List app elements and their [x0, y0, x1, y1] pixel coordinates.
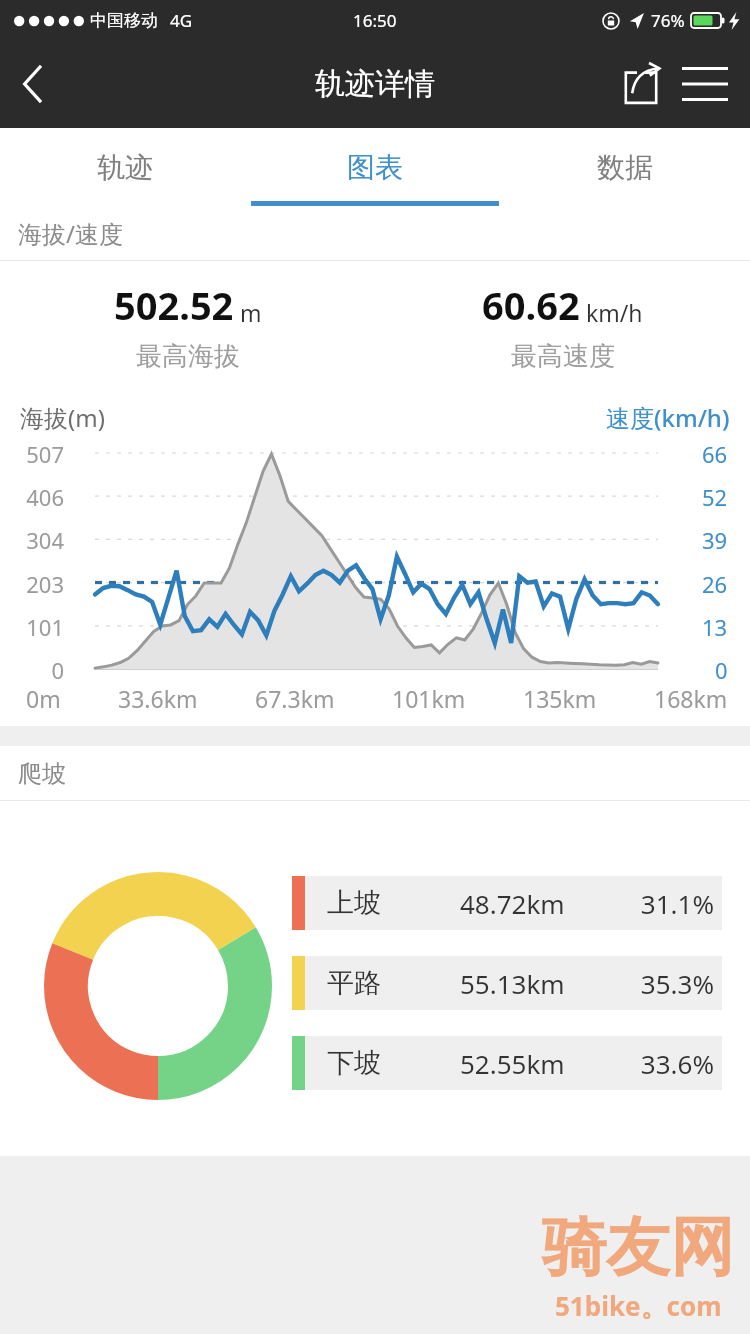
staticText: 4G — [170, 9, 193, 32]
button[interactable]: Menu — [672, 51, 738, 117]
staticText: 骑友网 — [542, 1207, 734, 1288]
staticText: 502.52 — [114, 279, 234, 331]
staticText: 0 — [715, 655, 728, 685]
staticText: 中国移动 — [90, 10, 158, 31]
staticText: 66 — [702, 439, 728, 469]
button[interactable]: 轨迹 — [0, 128, 250, 206]
staticText: 16:50 — [353, 9, 397, 32]
staticText: 最高速度 — [511, 340, 615, 373]
staticText: 上坡 — [327, 886, 381, 920]
staticText: 52.55km — [460, 1046, 610, 1081]
staticText: 406 — [12, 482, 64, 512]
staticText: 下坡 — [327, 1046, 381, 1080]
button[interactable]: 数据 — [500, 128, 750, 206]
staticText: 轨迹详情 — [315, 65, 435, 103]
staticText: 39 — [702, 525, 728, 555]
staticText: 55.13km — [460, 966, 610, 1001]
button[interactable]: Share — [610, 53, 672, 115]
staticText: 101 — [12, 612, 64, 642]
staticText: 203 — [12, 569, 64, 599]
staticText: 0 — [12, 655, 64, 685]
staticText: 爬坡 — [18, 759, 66, 789]
staticText: 33.6% — [610, 1046, 714, 1081]
staticText: 168km — [654, 683, 728, 714]
staticText: 海拔/速度 — [18, 217, 123, 250]
staticText: 图表 — [347, 150, 403, 185]
staticText: 35.3% — [610, 966, 714, 1001]
staticText: 31.1% — [610, 886, 714, 921]
staticText: 76% — [651, 9, 685, 32]
staticText: 304 — [12, 525, 64, 555]
staticText: 507 — [12, 439, 64, 469]
staticText: 26 — [702, 569, 728, 599]
staticText: 48.72km — [460, 886, 610, 921]
staticText: 51bike。com — [555, 1288, 722, 1324]
staticText: 135km — [523, 683, 597, 714]
button[interactable]: 平路 — [292, 956, 722, 1010]
staticText: 33.6km — [118, 683, 198, 714]
button[interactable]: 下坡 — [292, 1036, 722, 1090]
button[interactable]: Back — [0, 51, 66, 117]
staticText: 0m — [26, 683, 61, 714]
button[interactable]: 图表 — [250, 128, 500, 206]
staticText: 海拔(m) — [20, 401, 105, 434]
staticText: m — [240, 297, 262, 328]
staticText: km/h — [586, 297, 643, 328]
staticText: 速度(km/h) — [606, 401, 730, 434]
staticText: 13 — [702, 612, 728, 642]
staticText: 数据 — [597, 150, 653, 185]
button[interactable]: 上坡 — [292, 876, 722, 930]
staticText: 52 — [702, 482, 728, 512]
staticText: 67.3km — [255, 683, 335, 714]
staticText: 平路 — [327, 966, 381, 1000]
staticText: 101km — [392, 683, 466, 714]
staticText: 轨迹 — [97, 150, 153, 185]
staticText: 60.62 — [482, 279, 580, 331]
staticText: 最高海拔 — [136, 340, 240, 373]
